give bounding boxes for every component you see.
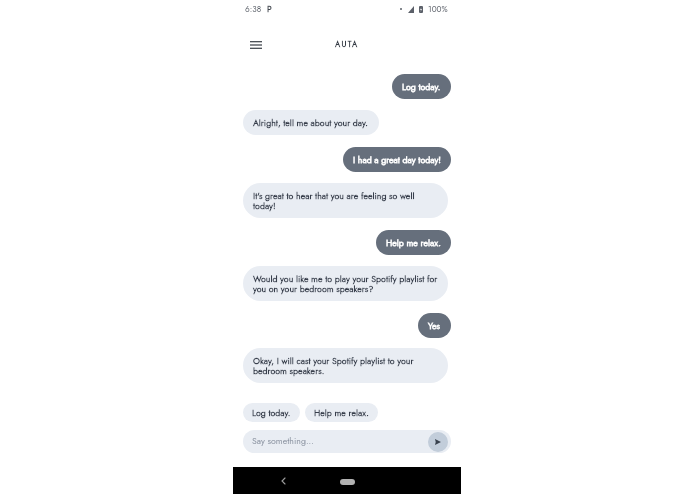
staticText: Okay, I will cast your Spotify playlist … (253, 356, 438, 376)
staticText: Yes (428, 321, 441, 331)
button[interactable]: It's great to hear that you are feeling … (243, 183, 448, 218)
button[interactable]: Menu (244, 33, 268, 57)
staticText: It's great to hear that you are feeling … (253, 191, 438, 211)
button[interactable]: Okay, I will cast your Spotify playlist … (243, 348, 448, 383)
button[interactable]: Log today. (243, 403, 300, 422)
button[interactable]: Alright, tell me about your day. (243, 110, 379, 135)
button[interactable]: Help me relax. (305, 403, 378, 422)
button[interactable]: Log today. (392, 74, 451, 99)
staticText: Help me relax. (386, 238, 441, 248)
staticText: Say something... (252, 435, 314, 448)
staticText: P (267, 3, 272, 15)
staticText: Log today. (402, 82, 441, 92)
staticText: AUTA (335, 39, 359, 50)
button[interactable]: Would you like me to play your Spotify p… (243, 266, 448, 301)
staticText: Log today. (252, 408, 291, 418)
staticText: 6:38 (245, 3, 262, 15)
button[interactable]: I had a great day today! (343, 147, 451, 172)
button[interactable]: Say something... (243, 430, 451, 453)
staticText: Alright, tell me about your day. (253, 118, 369, 128)
button[interactable]: Home (340, 479, 355, 485)
button[interactable]: Help me relax. (376, 230, 451, 255)
staticText: Would you like me to play your Spotify p… (253, 274, 438, 294)
button[interactable]: Send (428, 432, 448, 452)
staticText: I had a great day today! (353, 155, 441, 165)
button[interactable]: Yes (418, 313, 451, 338)
staticText: 100% (428, 3, 448, 15)
button[interactable]: Back (275, 473, 291, 489)
staticText: Help me relax. (314, 408, 369, 418)
